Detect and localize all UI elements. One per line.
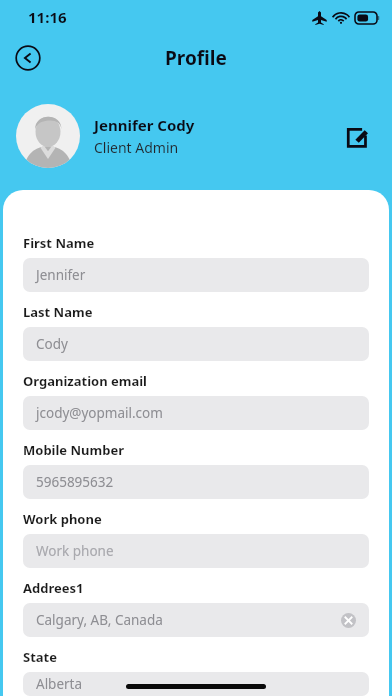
staticText: Addrees1 — [23, 579, 84, 597]
button[interactable]: Edit profile — [340, 119, 374, 153]
button[interactable]: Alberta — [23, 672, 369, 696]
button[interactable]: Calgary, AB, Canada — [23, 603, 369, 637]
staticText: Jennifer Cody — [94, 115, 195, 135]
staticText: Cody — [36, 335, 356, 353]
staticText: Jennifer — [36, 266, 356, 284]
staticText: Work phone — [23, 510, 102, 528]
staticText: Alberta — [36, 675, 356, 693]
staticText: 11:16 — [28, 7, 67, 27]
staticText: Last Name — [23, 303, 93, 321]
staticText: Organization email — [23, 372, 147, 390]
staticText: Work phone — [36, 542, 356, 560]
staticText: 5965895632 — [36, 473, 356, 491]
staticText: jcody@yopmail.com — [36, 404, 356, 422]
button[interactable]: Cody — [23, 327, 369, 361]
button[interactable]: 5965895632 — [23, 465, 369, 499]
button[interactable]: jcody@yopmail.com — [23, 396, 369, 430]
button[interactable]: Back — [12, 42, 44, 74]
staticText: First Name — [23, 234, 95, 252]
staticText: Calgary, AB, Canada — [36, 611, 341, 629]
staticText: Mobile Number — [23, 441, 124, 459]
staticText: Client Admin — [94, 138, 179, 157]
staticText: State — [23, 648, 57, 666]
button[interactable]: Jennifer — [23, 258, 369, 292]
staticText: Profile — [165, 45, 227, 71]
button[interactable]: Work phone — [23, 534, 369, 568]
